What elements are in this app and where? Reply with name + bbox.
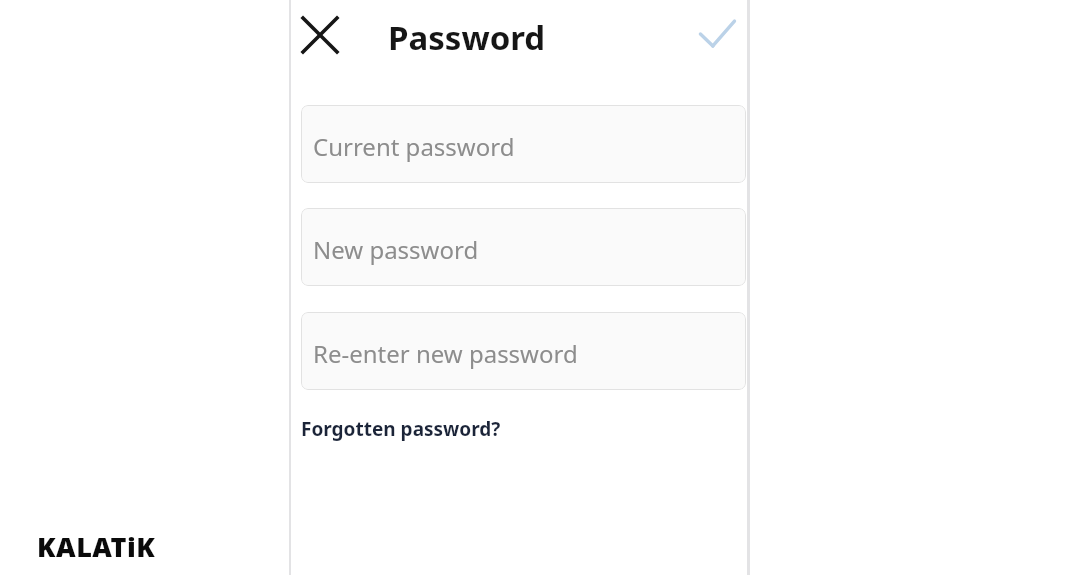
staticText: New password: [313, 233, 479, 266]
staticText: Password: [388, 15, 546, 60]
button[interactable]: Re-enter new password: [301, 312, 746, 390]
button[interactable]: Confirm: [694, 11, 740, 57]
staticText: Current password: [313, 130, 515, 163]
staticText: Forgotten password?: [301, 416, 501, 442]
button[interactable]: Close: [296, 11, 344, 59]
button[interactable]: New password: [301, 208, 746, 286]
button[interactable]: Forgotten password?: [301, 412, 501, 444]
button[interactable]: Current password: [301, 105, 746, 183]
staticText: Re-enter new password: [313, 337, 578, 370]
staticText: KALATiK: [37, 528, 156, 565]
